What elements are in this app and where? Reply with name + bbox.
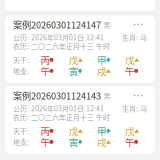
button[interactable]: 案例20260301124143	[5, 86, 155, 153]
staticText: 天干:	[13, 55, 29, 65]
staticText: 案例20260301124147	[13, 18, 101, 31]
staticText: 公历: 2026年03月01日 12:41	[13, 32, 104, 42]
staticText: 天干:	[13, 126, 29, 136]
staticText: 案例20260301124143	[13, 89, 101, 102]
staticText: 生肖: 马	[122, 103, 147, 113]
staticText: 戊	[125, 53, 135, 67]
staticText: 戊	[69, 124, 79, 138]
staticText: 甲	[97, 53, 107, 67]
staticText: 男	[103, 90, 110, 100]
staticText: 生肖: 马	[122, 32, 147, 42]
button[interactable]: 案例20260301124147	[5, 15, 155, 82]
staticText: 戊	[125, 124, 135, 138]
staticText: 农历: 二〇二六年正月十三 午时	[13, 41, 110, 51]
staticText: 戊	[69, 53, 79, 67]
staticText: 戌	[97, 135, 107, 149]
staticText: 戌	[97, 64, 107, 78]
staticText: 午	[125, 64, 135, 78]
staticText: 甲	[97, 124, 107, 138]
staticText: 男	[103, 19, 110, 29]
staticText: 农历: 二〇二六年正月十三 午时	[13, 112, 110, 122]
button[interactable]: More options	[129, 18, 147, 30]
staticText: 午	[125, 135, 135, 149]
staticText: 午	[40, 135, 50, 149]
staticText: 公历: 2026年03月01日 12:41	[13, 103, 104, 113]
staticText: 午	[40, 64, 50, 78]
staticText: 丙	[40, 53, 50, 67]
staticText: 地支:	[13, 66, 29, 76]
staticText: 寅	[69, 64, 79, 78]
staticText: 丙	[40, 124, 50, 138]
button[interactable]: More options	[129, 89, 147, 101]
staticText: 寅	[69, 135, 79, 149]
staticText: 地支:	[13, 137, 29, 147]
